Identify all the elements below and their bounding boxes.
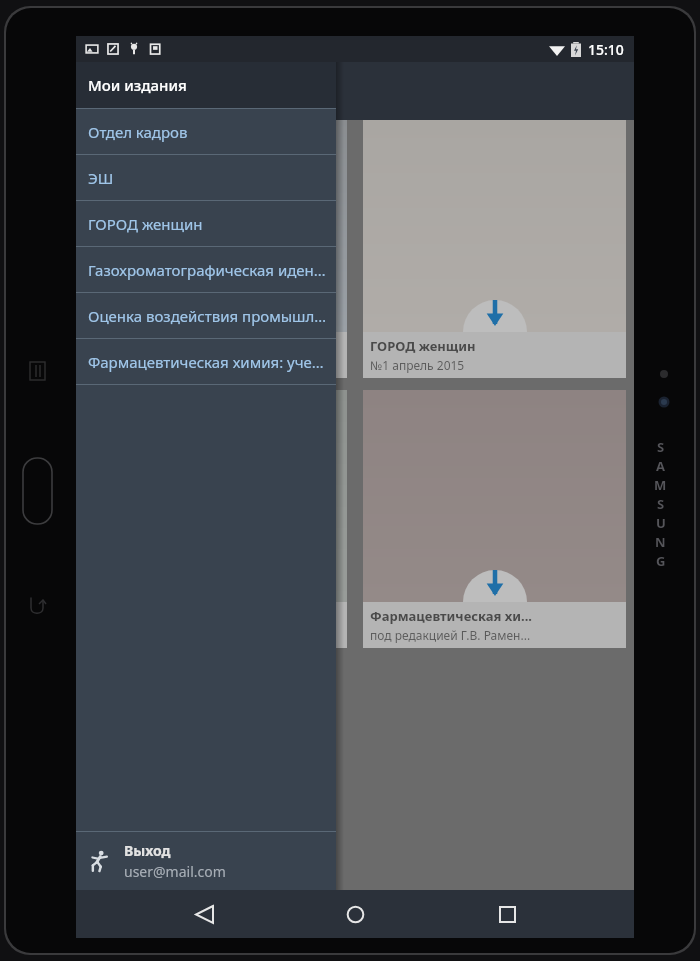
button[interactable]: Оценка воздействия промышленн… bbox=[76, 293, 336, 338]
staticText: ЭШ bbox=[88, 168, 114, 188]
staticText: ГОРОД женщин bbox=[88, 214, 203, 234]
staticText: user@mail.com bbox=[124, 862, 226, 881]
button[interactable]: Recent apps bbox=[483, 890, 531, 938]
staticText: Выход bbox=[124, 841, 171, 860]
staticText: N bbox=[655, 533, 666, 551]
staticText: M bbox=[654, 476, 667, 494]
button[interactable]: ГОРОД женщин bbox=[363, 120, 626, 378]
staticText: Мои издания bbox=[88, 75, 187, 95]
staticText: 15:10 bbox=[588, 40, 624, 59]
staticText: Фармацевтическая хи... bbox=[370, 607, 532, 625]
staticText: G bbox=[656, 552, 666, 570]
button[interactable]: ГОРОД женщин bbox=[76, 201, 336, 246]
button[interactable]: Home bbox=[331, 890, 379, 938]
button[interactable]: Выход bbox=[76, 832, 336, 890]
button[interactable]: Газохроматографическая иденти… bbox=[76, 247, 336, 292]
button[interactable]: Back bbox=[100, 72, 140, 112]
button[interactable]: Фармацевтическая химия: учебник bbox=[76, 339, 336, 384]
staticText: ГОРОД женщин bbox=[370, 337, 476, 355]
button[interactable]: оздействия п... bbox=[84, 390, 347, 648]
staticText: №1 апрель 2015 bbox=[370, 357, 465, 373]
button[interactable]: Отдел кадров bbox=[76, 109, 336, 154]
staticText: №3 март 2015 bbox=[91, 357, 173, 373]
button[interactable]: Фармацевтическая хи... bbox=[363, 390, 626, 648]
staticText: U bbox=[656, 514, 666, 532]
staticText: Отдел кадров bbox=[88, 122, 188, 142]
staticText: Отдел кадров bbox=[91, 337, 183, 355]
staticText: S bbox=[657, 495, 665, 513]
staticText: Фармацевтическая химия: учебник bbox=[88, 352, 330, 372]
staticText: S bbox=[657, 438, 665, 456]
button[interactable]: Мои издания bbox=[76, 62, 336, 108]
staticText: под редакцией Г.В. Рамен... bbox=[370, 627, 531, 643]
staticText: Оценка воздействия промышленн… bbox=[88, 306, 330, 326]
staticText: Газохроматографическая иденти… bbox=[88, 260, 330, 280]
button[interactable]: Отдел кадров bbox=[84, 120, 347, 378]
staticText: A bbox=[656, 457, 665, 475]
button[interactable]: Back bbox=[180, 890, 228, 938]
button[interactable]: ЭШ bbox=[76, 155, 336, 200]
